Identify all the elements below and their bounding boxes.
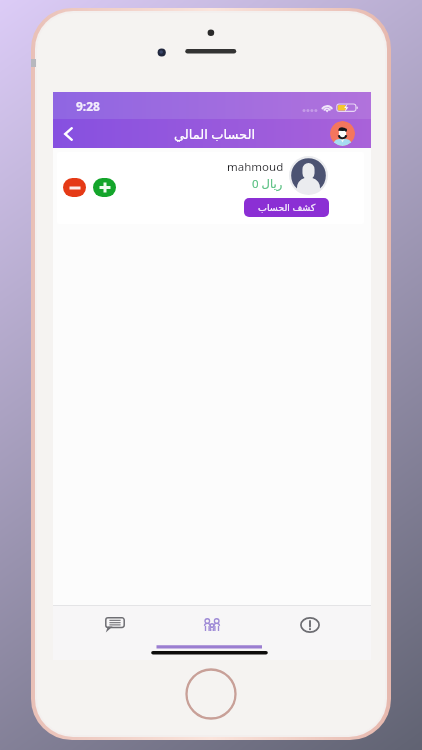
button[interactable]: Chat [79,606,151,643]
button[interactable]: Back [53,119,83,148]
staticText: 0 ريال [252,176,283,192]
button[interactable]: كشف الحساب [244,198,329,217]
staticText: mahmoud [227,159,284,175]
button[interactable]: Profile [330,121,355,146]
button[interactable]: Family [176,606,248,643]
staticText: 9:28 [76,98,100,114]
button[interactable]: Withdraw [63,178,86,197]
staticText: الحساب المالي [174,125,255,143]
button[interactable]: Notifications [274,606,346,643]
button[interactable]: Deposit [93,178,116,197]
staticText: كشف الحساب [258,201,316,214]
